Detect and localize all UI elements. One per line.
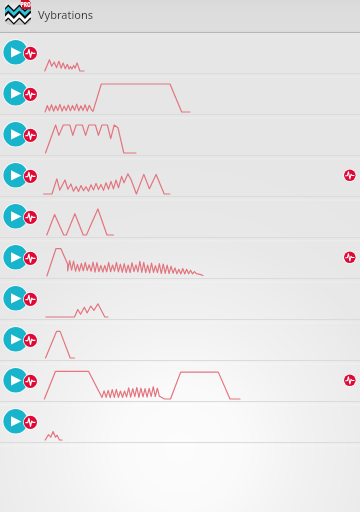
button[interactable]: Play vibration pattern bbox=[3, 163, 27, 187]
button[interactable]: Edit vibration pattern bbox=[24, 375, 37, 388]
button[interactable]: Edit vibration pattern bbox=[24, 252, 37, 265]
button[interactable]: Play vibration pattern bbox=[3, 327, 27, 351]
button[interactable]: Play vibration pattern bbox=[3, 409, 27, 433]
button[interactable]: Edit vibration pattern bbox=[24, 293, 37, 306]
button[interactable]: Play vibration pattern bbox=[3, 40, 27, 64]
button[interactable]: Play vibration pattern bbox=[0, 156, 360, 197]
button[interactable]: Edit vibration pattern bbox=[24, 416, 37, 429]
button[interactable]: Edit vibration pattern bbox=[24, 211, 37, 224]
button[interactable]: Active vibration bbox=[344, 375, 356, 387]
button[interactable]: Play vibration pattern bbox=[3, 368, 27, 392]
button[interactable]: Play vibration pattern bbox=[3, 204, 27, 228]
button[interactable]: Play vibration pattern bbox=[3, 245, 27, 269]
button[interactable]: Edit vibration pattern bbox=[24, 334, 37, 347]
button[interactable]: Edit vibration pattern bbox=[24, 129, 37, 142]
button[interactable]: Active vibration bbox=[344, 252, 356, 264]
staticText: PRO bbox=[21, 0, 31, 9]
button[interactable]: Play vibration pattern bbox=[0, 361, 360, 402]
button[interactable]: Play vibration pattern bbox=[0, 33, 360, 74]
button[interactable]: Play vibration pattern bbox=[0, 74, 360, 115]
button[interactable]: Active vibration bbox=[344, 170, 356, 182]
button[interactable]: Edit vibration pattern bbox=[24, 170, 37, 183]
button[interactable]: Vybrations app icon bbox=[5, 0, 31, 25]
button[interactable]: Play vibration pattern bbox=[3, 122, 27, 146]
button[interactable]: Edit vibration pattern bbox=[24, 88, 37, 101]
button[interactable]: Play vibration pattern bbox=[0, 115, 360, 156]
button[interactable]: Play vibration pattern bbox=[0, 238, 360, 279]
button[interactable]: Play vibration pattern bbox=[0, 320, 360, 361]
button[interactable]: Play vibration pattern bbox=[3, 81, 27, 105]
button[interactable]: Edit vibration pattern bbox=[24, 47, 37, 60]
staticText: Vybrations bbox=[38, 7, 93, 22]
button[interactable]: Play vibration pattern bbox=[0, 279, 360, 320]
button[interactable]: Play vibration pattern bbox=[3, 286, 27, 310]
button[interactable]: Play vibration pattern bbox=[0, 197, 360, 238]
button[interactable]: Play vibration pattern bbox=[0, 402, 360, 443]
